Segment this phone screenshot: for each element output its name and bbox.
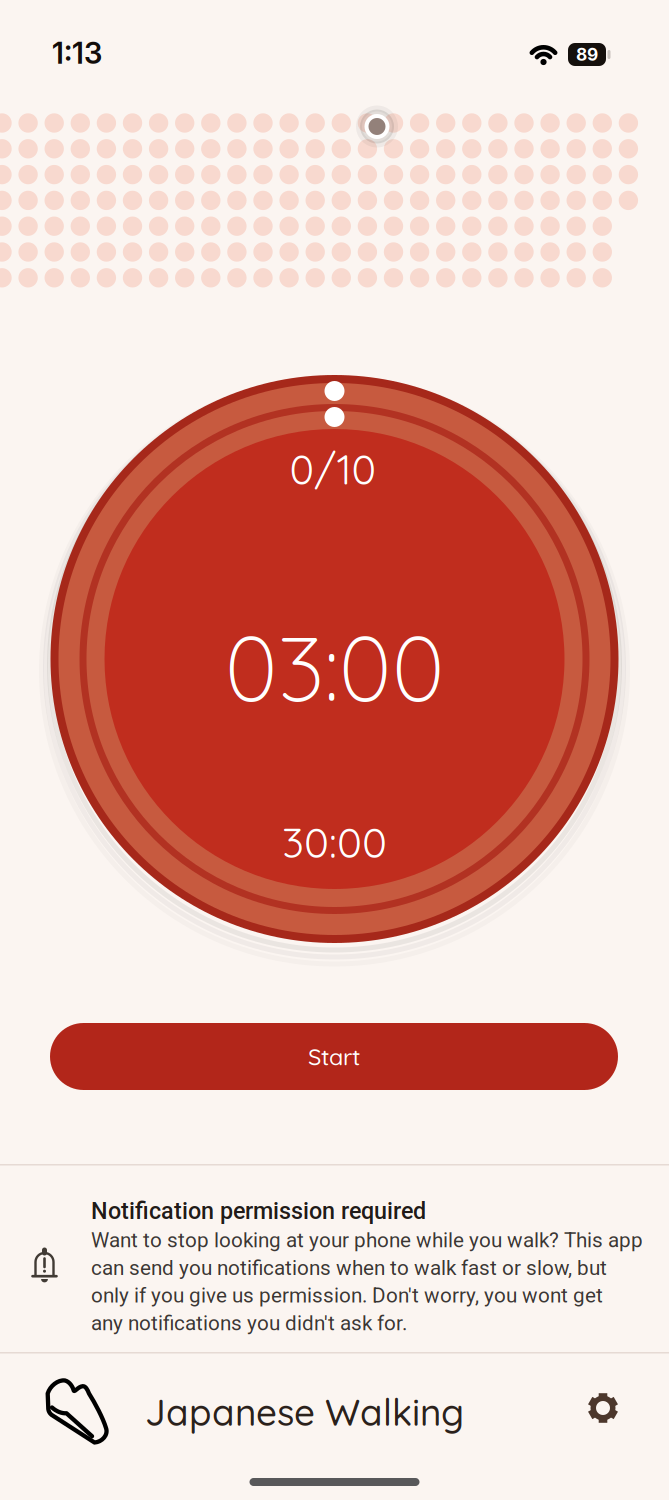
staticText: Japanese Walking — [145, 1389, 464, 1435]
button[interactable]: Notification permission required — [0, 1165, 669, 1352]
staticText: Notification permission required — [91, 1197, 426, 1225]
button[interactable]: Start — [50, 1023, 618, 1090]
staticText: Want to stop looking at your phone while… — [91, 1228, 643, 1335]
staticText: 1:13 — [52, 35, 102, 71]
staticText: Start — [308, 1042, 360, 1071]
staticText: 89 — [576, 44, 598, 65]
staticText: 30:00 — [282, 816, 387, 868]
staticText: 0/10 — [289, 443, 376, 495]
button[interactable]: Settings — [586, 1390, 620, 1426]
staticText: 03:00 — [224, 610, 444, 724]
